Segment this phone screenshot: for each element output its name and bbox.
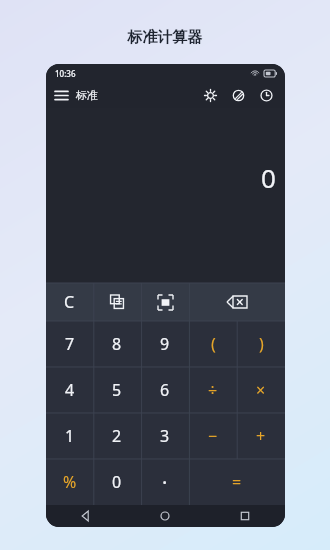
button[interactable]: back: [189, 283, 285, 321]
button[interactable]: copy: [93, 283, 141, 321]
staticText: 1: [65, 425, 75, 447]
button[interactable]: 8: [93, 321, 141, 367]
staticText: 8: [112, 333, 122, 355]
button[interactable]: −: [189, 413, 237, 459]
button[interactable]: 0: [93, 459, 141, 505]
staticText: 2: [112, 425, 122, 447]
button[interactable]: =: [189, 459, 285, 505]
staticText: 5: [112, 379, 122, 401]
staticText: ×: [256, 379, 266, 401]
button[interactable]: 2: [93, 413, 141, 459]
staticText: ): [259, 333, 264, 355]
button[interactable]: %: [46, 459, 93, 505]
staticText: 标准: [76, 88, 98, 102]
button[interactable]: ÷: [189, 367, 237, 413]
staticText: 9: [160, 333, 170, 355]
button[interactable]: 7: [46, 321, 93, 367]
staticText: %: [63, 471, 77, 493]
staticText: 4: [65, 379, 75, 401]
button[interactable]: ·: [141, 459, 189, 505]
button[interactable]: Home: [125, 505, 205, 527]
button[interactable]: (: [189, 321, 237, 367]
button[interactable]: C: [46, 283, 93, 321]
button[interactable]: +: [237, 413, 285, 459]
staticText: (: [211, 333, 216, 355]
button[interactable]: History: [252, 82, 280, 108]
button[interactable]: 1: [46, 413, 93, 459]
button[interactable]: Back: [46, 505, 125, 527]
button[interactable]: 3: [141, 413, 189, 459]
staticText: ·: [162, 469, 168, 496]
staticText: 6: [160, 379, 170, 401]
button[interactable]: Brightness: [196, 82, 224, 108]
button[interactable]: Menu: [46, 82, 76, 108]
staticText: 7: [65, 333, 75, 355]
staticText: C: [64, 291, 75, 313]
staticText: ÷: [208, 379, 218, 401]
staticText: 0: [261, 160, 276, 195]
button[interactable]: Recents: [205, 505, 285, 527]
button[interactable]: ×: [237, 367, 285, 413]
staticText: 10:36: [55, 68, 76, 79]
staticText: 0: [112, 471, 122, 493]
button[interactable]: 5: [93, 367, 141, 413]
button[interactable]: ): [237, 321, 285, 367]
staticText: −: [208, 425, 218, 447]
button[interactable]: 9: [141, 321, 189, 367]
staticText: 标准计算器: [0, 28, 330, 47]
staticText: +: [256, 425, 266, 447]
staticText: 3: [160, 425, 170, 447]
button[interactable]: 4: [46, 367, 93, 413]
staticText: =: [232, 471, 242, 493]
button[interactable]: Theme: [224, 82, 252, 108]
button[interactable]: 6: [141, 367, 189, 413]
button[interactable]: scan: [141, 283, 189, 321]
